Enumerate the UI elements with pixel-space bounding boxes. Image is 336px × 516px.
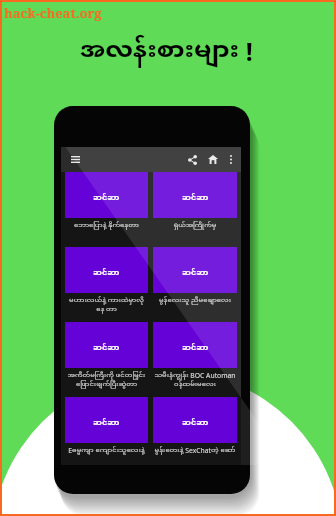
staticText: မွန်လေးသူ ညီမချောလေး (154, 296, 236, 305)
button[interactable]: ဆင်ဆာ (65, 172, 148, 230)
staticText: ဆင်ဆာ (182, 192, 209, 203)
staticText: ဆင်ဆာ (93, 417, 120, 428)
staticText: Eဓမ္မကျာ ကျောင်းသူလေးနဲ့ (66, 446, 147, 455)
staticText: hack-cheat.org (4, 4, 102, 22)
staticText: ဆင်ဆာ (93, 267, 120, 278)
staticText: ဆင်ဆာ (93, 342, 120, 353)
button[interactable]: Share (184, 147, 201, 172)
staticText: ဆင်ဆာ (93, 192, 120, 203)
staticText: သမီးနံကျွန်း BOC Automan ဝန်ထမ်းမလေး (154, 371, 236, 389)
button[interactable]: Menu (65, 147, 86, 172)
button[interactable]: ဆင်ဆာ (153, 322, 237, 389)
staticText: ဘောပြောနဲ့ နိုက်နေတာ (66, 221, 147, 230)
button[interactable]: ဆင်ဆာ (65, 397, 148, 455)
staticText: ဆင်ဆာ (182, 417, 209, 428)
button[interactable]: More options (222, 147, 239, 172)
staticText: ရှယ်အကြိုက်မှ (154, 221, 236, 230)
staticText: ဆင်ဆာ (182, 267, 209, 278)
staticText: အကီတ်မကြီးကို ဖင်တမြှင်း ဖြောင်းဖျက်ပြီး… (66, 371, 147, 389)
button[interactable]: ဆင်ဆာ (65, 247, 148, 314)
button[interactable]: Home (204, 147, 221, 172)
button[interactable]: ဆင်ဆာ (153, 172, 237, 230)
staticText: မဟားလယ်နဲ့ ကားထဲမှာလိုနေ တာ (66, 296, 147, 314)
button[interactable]: ဆင်ဆာ (65, 322, 148, 389)
button[interactable]: ဆင်ဆာ (153, 247, 237, 305)
staticText: ဆင်ဆာ (182, 342, 209, 353)
staticText: အလန်းစားများ ! (80, 34, 253, 68)
button[interactable]: ဆင်ဆာ (153, 397, 237, 455)
staticText: မွန်းတေးနဲ့ SexChatတဲ့ ဆော် (154, 446, 236, 455)
